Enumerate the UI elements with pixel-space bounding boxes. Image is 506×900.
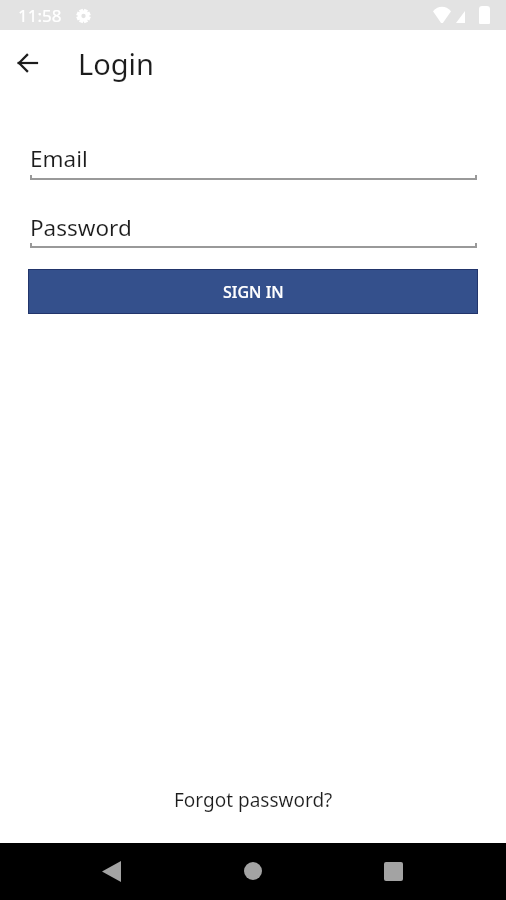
button[interactable]: Home <box>229 847 277 895</box>
staticText: Forgot password? <box>174 787 333 813</box>
staticText: Email <box>30 143 88 174</box>
button[interactable]: Recent apps <box>369 847 417 895</box>
button[interactable]: Forgot password? <box>165 780 341 820</box>
staticText: Password <box>30 212 132 243</box>
staticText: Login <box>78 44 154 83</box>
button[interactable] <box>28 206 478 251</box>
staticText: SIGN IN <box>223 281 284 303</box>
button[interactable]: Navigate up <box>9 45 45 81</box>
staticText: 11:58 <box>18 4 62 27</box>
button[interactable]: Back <box>87 847 135 895</box>
button[interactable] <box>28 137 478 182</box>
button[interactable]: SIGN IN <box>29 270 477 313</box>
